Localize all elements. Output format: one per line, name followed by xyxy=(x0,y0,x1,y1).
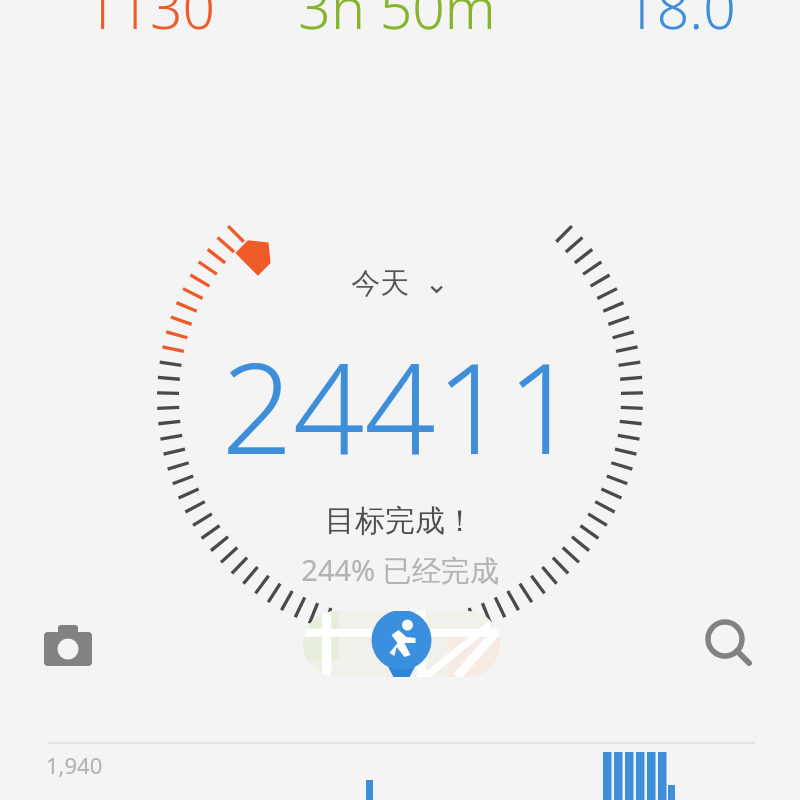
button[interactable]: 1130 xyxy=(50,0,250,44)
button[interactable]: 今天 ⌄ xyxy=(300,262,500,306)
button[interactable]: 18.0 xyxy=(580,0,780,44)
staticText: 1130 xyxy=(50,0,250,44)
staticText: 3h 50m xyxy=(272,0,522,44)
staticText: 今天 ⌄ xyxy=(300,262,500,306)
button[interactable]: Camera xyxy=(34,612,102,680)
staticText: 18.0 xyxy=(580,0,780,44)
button[interactable]: Search xyxy=(697,610,759,672)
staticText: 1,940 xyxy=(46,750,103,780)
staticText: 244% 已经完成 xyxy=(200,550,600,590)
staticText: 24411 xyxy=(100,320,700,470)
staticText: 目标完成！ xyxy=(200,502,600,542)
button[interactable]: Map route xyxy=(303,611,500,677)
button[interactable]: 3h 50m xyxy=(272,0,522,44)
